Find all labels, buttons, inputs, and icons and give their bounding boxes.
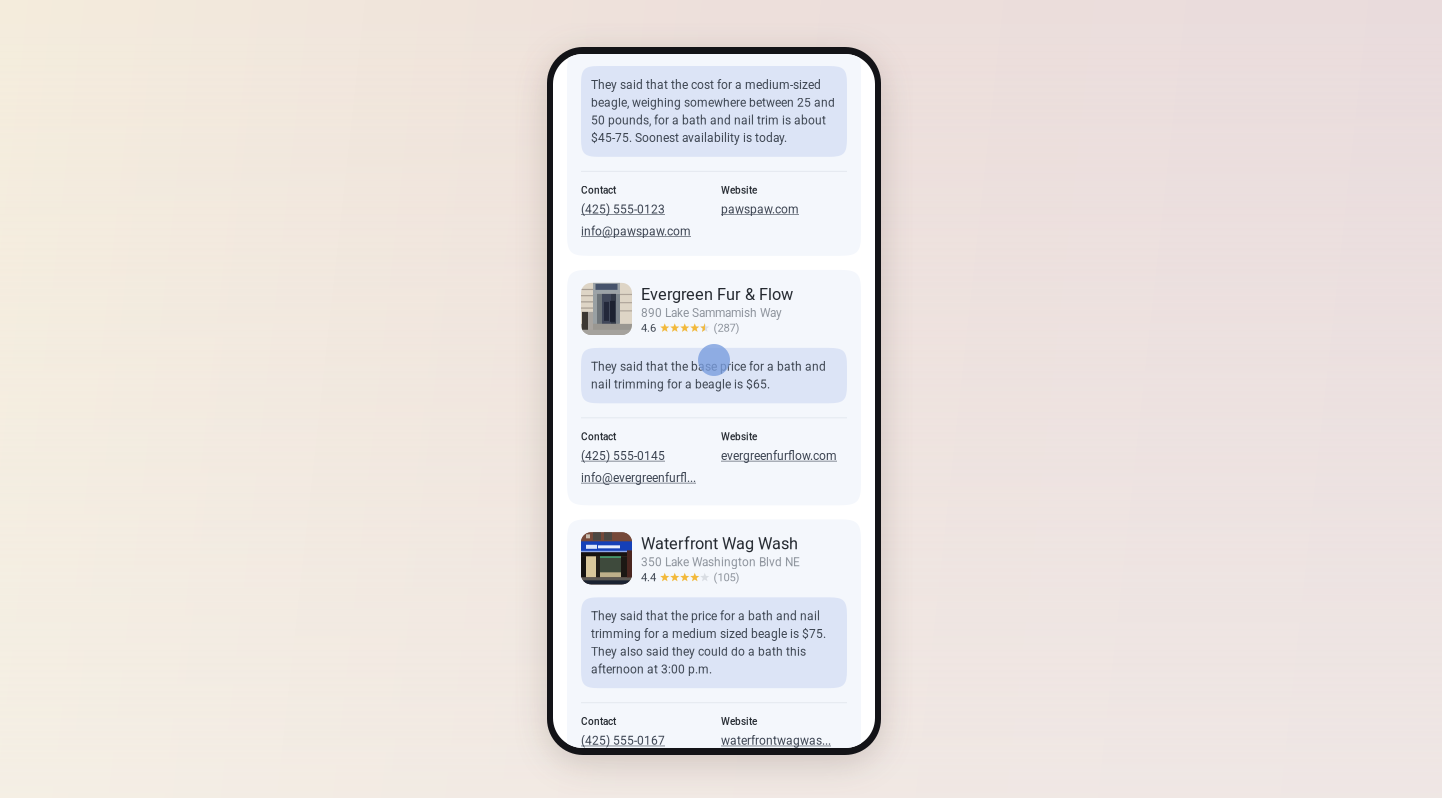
- button[interactable]: Evergreen Fur & Flow: [581, 283, 847, 335]
- staticText: Contact: [581, 716, 616, 727]
- staticText: (425) 555-0145: [581, 449, 665, 463]
- staticText: info@pawspaw.com: [581, 224, 691, 238]
- staticText: They said that the cost for a medium-siz…: [591, 76, 835, 147]
- staticText: (425) 555-0167: [581, 734, 665, 748]
- button[interactable]: evergreenfurflow.com: [721, 449, 837, 462]
- button[interactable]: info@pawspaw.com: [581, 225, 691, 238]
- staticText: info@evergreenfurfl...: [581, 471, 696, 485]
- staticText: Website: [721, 431, 757, 443]
- staticText: pawspaw.com: [721, 202, 799, 216]
- staticText: They said that the base price for a bath…: [591, 358, 826, 393]
- staticText: (287): [713, 321, 739, 334]
- staticText: waterfrontwagwas...: [721, 734, 831, 748]
- staticText: 4.4: [641, 571, 656, 584]
- staticText: (105): [713, 571, 739, 584]
- staticText: They said that the price for a bath and …: [591, 607, 826, 678]
- button[interactable]: Waterfront Wag Wash: [581, 532, 847, 584]
- button[interactable]: waterfrontwagwas...: [721, 734, 831, 747]
- staticText: 350 Lake Washington Blvd NE: [641, 555, 800, 569]
- button[interactable]: pawspaw.com: [721, 203, 799, 216]
- button[interactable]: (425) 555-0123: [581, 203, 665, 216]
- staticText: Website: [721, 716, 757, 727]
- staticText: Contact: [581, 431, 616, 443]
- button[interactable]: (425) 555-0167: [581, 734, 665, 747]
- staticText: Website: [721, 184, 757, 196]
- staticText: 4.6: [641, 321, 656, 334]
- staticText: evergreenfurflow.com: [721, 449, 837, 463]
- staticText: Evergreen Fur & Flow: [641, 285, 793, 304]
- staticText: Waterfront Wag Wash: [641, 534, 798, 553]
- button[interactable]: (425) 555-0145: [581, 449, 665, 462]
- button[interactable]: info@evergreenfurfl...: [581, 471, 696, 484]
- staticText: (425) 555-0123: [581, 202, 665, 216]
- staticText: 890 Lake Sammamish Way: [641, 306, 782, 320]
- staticText: Contact: [581, 184, 616, 196]
